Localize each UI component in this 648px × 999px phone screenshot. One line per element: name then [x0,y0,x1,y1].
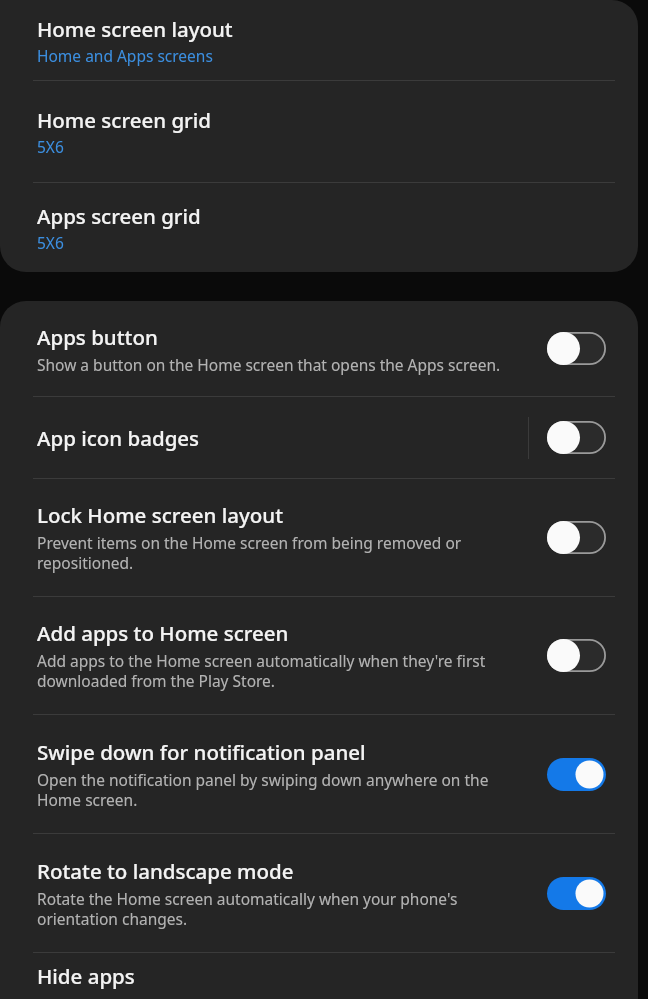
staticText: Home screen grid [37,106,212,134]
button[interactable]: Rotate to landscape mode [547,877,606,910]
button[interactable]: App icon badges [547,421,606,454]
button[interactable]: Apps button [547,332,606,365]
staticText: Rotate the Home screen automatically whe… [37,888,535,930]
staticText: Apps button [37,323,158,351]
staticText: Rotate to landscape mode [37,857,294,885]
button[interactable]: Add apps to Home screen [547,639,606,672]
staticText: Apps screen grid [37,202,201,230]
staticText: Home and Apps screens [37,45,213,66]
button[interactable]: Apps button [0,301,638,396]
button[interactable]: Home screen layout [0,0,638,80]
button[interactable]: App icon badges [0,397,638,478]
button[interactable]: Add apps to Home screen [0,597,638,714]
button[interactable]: Lock Home screen layout [547,521,606,554]
staticText: Swipe down for notification panel [37,738,366,766]
staticText: Add apps to Home screen [37,619,289,647]
staticText: Lock Home screen layout [37,501,284,529]
staticText: App icon badges [37,424,200,452]
button[interactable]: Swipe down for notification panel [547,758,606,791]
button[interactable]: Apps screen grid [0,183,638,272]
staticText: Add apps to the Home screen automaticall… [37,650,535,692]
staticText: Show a button on the Home screen that op… [37,354,501,375]
staticText: 5X6 [37,136,64,157]
button[interactable]: Swipe down for notification panel [0,715,638,833]
staticText: Hide apps [37,962,135,990]
button[interactable]: Rotate to landscape mode [0,834,638,952]
button[interactable]: Hide apps [0,953,638,999]
staticText: Open the notification panel by swiping d… [37,769,535,811]
staticText: 5X6 [37,232,64,253]
staticText: Home screen layout [37,15,233,43]
staticText: Prevent items on the Home screen from be… [37,532,535,574]
button[interactable]: Lock Home screen layout [0,479,638,596]
button[interactable]: Home screen grid [0,81,638,182]
